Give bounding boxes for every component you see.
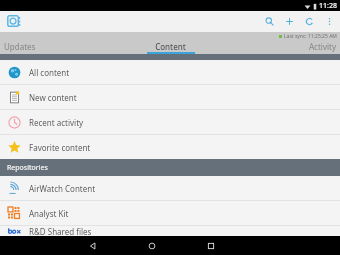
staticText: Activity	[231, 41, 336, 52]
button[interactable]: Add	[283, 15, 296, 28]
button[interactable]: Back	[84, 237, 101, 254]
button[interactable]: More options	[323, 15, 336, 28]
button[interactable]: Analyst Kit	[0, 201, 340, 225]
staticText: Repositories	[7, 163, 48, 173]
button[interactable]: All content	[0, 60, 340, 84]
button[interactable]: App logo	[6, 14, 21, 29]
staticText: Recent activity	[29, 117, 84, 128]
button[interactable]: AirWatch Content	[0, 176, 340, 200]
staticText: AirWatch Content	[29, 183, 96, 194]
button[interactable]: Home	[143, 237, 160, 254]
staticText: Updates	[4, 41, 110, 52]
button[interactable]: Search	[263, 15, 276, 28]
button[interactable]: Updates	[0, 41, 114, 54]
staticText: Favorite content	[29, 142, 91, 153]
button[interactable]: New content	[0, 85, 340, 109]
button[interactable]: Sync	[303, 15, 316, 28]
button[interactable]: Recent activity	[0, 110, 340, 134]
staticText: All content	[29, 67, 70, 78]
staticText: Last sync: 11:25:25 AM	[284, 33, 337, 40]
button[interactable]: Activity	[227, 41, 340, 54]
staticText: New content	[29, 92, 77, 103]
button[interactable]: Favorite content	[0, 135, 340, 159]
staticText: R&D Shared files	[29, 226, 92, 236]
button[interactable]: Recent apps	[202, 237, 219, 254]
staticText: Content	[118, 41, 223, 52]
button[interactable]: Content	[114, 41, 227, 54]
button[interactable]: R&D Shared files	[0, 226, 340, 236]
staticText: Analyst Kit	[29, 208, 69, 219]
staticText: 11:28	[319, 1, 337, 11]
